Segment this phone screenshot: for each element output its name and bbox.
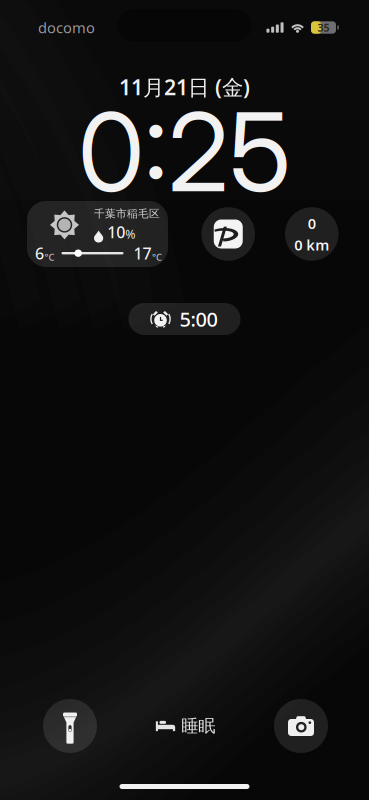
staticText: °C	[44, 251, 54, 263]
staticText: 6	[35, 243, 44, 264]
staticText: 10	[107, 221, 125, 242]
staticText: 17	[133, 243, 151, 264]
staticText: %	[125, 226, 135, 242]
staticText: docomo	[38, 18, 95, 37]
staticText: 11月21日 (金)	[119, 73, 250, 101]
staticText: 0:25	[78, 87, 291, 217]
staticText: 5:00	[179, 306, 217, 332]
staticText: 千葉市稲毛区	[94, 207, 160, 220]
button[interactable]: 千葉市稲毛区	[27, 201, 168, 267]
staticText: 0	[308, 213, 316, 233]
button[interactable]: Flashlight	[43, 699, 97, 753]
button[interactable]: Activity distance	[285, 207, 338, 261]
button[interactable]: 睡眠	[146, 709, 225, 743]
staticText: 睡眠	[181, 715, 215, 737]
button[interactable]: 5:00	[128, 303, 240, 335]
button[interactable]: Camera	[274, 699, 328, 753]
staticText: 0 km	[294, 235, 329, 254]
button[interactable]: PayPay	[201, 207, 255, 261]
staticText: °C	[152, 251, 162, 263]
staticText: 35	[317, 20, 329, 35]
